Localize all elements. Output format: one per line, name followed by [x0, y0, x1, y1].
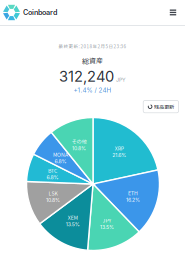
- staticText: 総資産: [82, 56, 103, 66]
- staticText: JPY: [103, 217, 112, 224]
- staticText: +1.4% / 24H: [73, 86, 111, 94]
- staticText: 13.5%: [100, 224, 114, 230]
- staticText: 13.5%: [66, 221, 80, 228]
- staticText: 6.8%: [46, 174, 58, 180]
- staticText: その他: [72, 138, 87, 145]
- staticText: 最終更新: 2018年2月5日23:36: [58, 43, 126, 50]
- staticText: JPY: [116, 77, 126, 83]
- staticText: LSK: [48, 189, 57, 197]
- staticText: 10.8%: [46, 197, 60, 203]
- staticText: 21.6%: [112, 152, 126, 158]
- staticText: 残高更新: [154, 103, 174, 110]
- staticText: 16.2%: [126, 197, 140, 203]
- button[interactable]: 残高更新: [143, 100, 179, 113]
- staticText: BTC: [48, 167, 57, 174]
- staticText: Coinboard: [23, 8, 57, 17]
- staticText: XEM: [68, 214, 78, 221]
- staticText: ETH: [128, 189, 138, 197]
- staticText: XRP: [115, 144, 124, 152]
- staticText: 6.8%: [54, 158, 66, 165]
- staticText: 312,240: [59, 68, 114, 85]
- staticText: MONA: [53, 151, 68, 158]
- staticText: 10.8%: [72, 145, 86, 151]
- button[interactable]: Menu: [164, 3, 182, 21]
